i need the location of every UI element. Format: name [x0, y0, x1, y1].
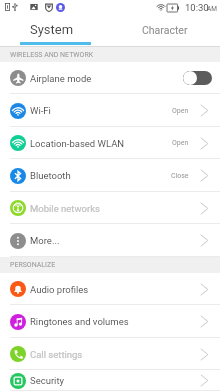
staticText: Bluetooth [30, 170, 71, 181]
staticText: 10:30 [185, 2, 209, 13]
staticText: Call settings [30, 349, 83, 360]
staticText: Close [171, 172, 189, 180]
button[interactable]: Mobile networks [0, 192, 220, 224]
button[interactable]: Security [0, 370, 220, 391]
staticText: Open [172, 107, 189, 115]
button[interactable]: Wi-Fi [0, 94, 220, 127]
button[interactable]: Airplane mode toggle [183, 71, 212, 85]
staticText: WIRELESS AND NETWORK [10, 51, 94, 59]
staticText: More... [30, 235, 60, 246]
staticText: Security [30, 375, 65, 386]
button[interactable]: Bluetooth [0, 159, 220, 192]
button[interactable]: More... [0, 224, 220, 257]
button[interactable]: Ringtones and volumes [0, 305, 220, 338]
staticText: Audio profiles [30, 284, 89, 295]
button[interactable]: Call settings [0, 338, 220, 370]
staticText: Location-based WLAN [30, 138, 125, 149]
staticText: PERSONALIZE [10, 261, 56, 269]
button[interactable]: System [0, 14, 110, 47]
staticText: Character [142, 24, 188, 36]
staticText: Open [172, 139, 189, 147]
staticText: Mobile networks [30, 203, 100, 214]
button[interactable]: Audio profiles [0, 273, 220, 305]
button[interactable]: Location-based WLAN [0, 127, 220, 159]
button[interactable]: Character [110, 14, 220, 47]
button[interactable]: Airplane mode [0, 62, 220, 94]
staticText: Wi-Fi [30, 105, 51, 116]
staticText: AM [207, 5, 217, 13]
staticText: System [30, 22, 74, 37]
staticText: Ringtones and volumes [30, 316, 129, 327]
staticText: Airplane mode [30, 73, 92, 84]
